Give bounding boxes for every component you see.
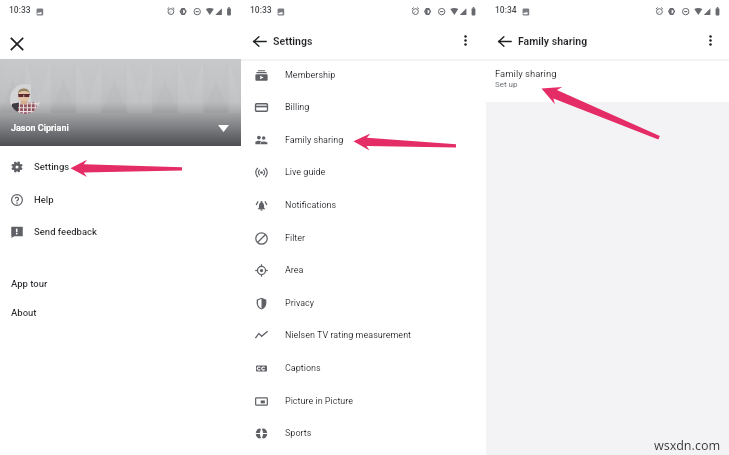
staticText: About xyxy=(11,307,37,318)
button[interactable]: App tour xyxy=(0,269,241,297)
staticText: Settings xyxy=(34,161,70,172)
staticText: Area xyxy=(285,265,304,276)
staticText: 10:33 xyxy=(9,5,31,15)
button[interactable]: Sports xyxy=(241,417,486,449)
button[interactable]: Family sharing xyxy=(241,124,486,156)
staticText: Filter xyxy=(285,233,306,244)
button[interactable]: Notifications xyxy=(241,189,486,221)
staticText: Picture in Picture xyxy=(285,396,354,407)
button[interactable]: Family sharing xyxy=(486,60,729,102)
staticText: Privacy xyxy=(285,298,315,309)
button[interactable]: Picture in Picture xyxy=(241,385,486,417)
button[interactable]: More options xyxy=(458,33,473,48)
button[interactable]: Captions xyxy=(241,352,486,384)
staticText: Jason Cipriani xyxy=(11,123,69,134)
button[interactable]: Back xyxy=(497,34,512,49)
staticText: 10:33 xyxy=(250,5,272,15)
staticText: Help xyxy=(34,194,54,205)
button[interactable]: Privacy xyxy=(241,287,486,319)
staticText: Settings xyxy=(273,35,313,47)
button[interactable]: Back xyxy=(252,34,267,49)
staticText: Billing xyxy=(285,102,310,113)
staticText: Sports xyxy=(285,428,312,439)
staticText: Captions xyxy=(285,363,321,374)
button[interactable]: Nielsen TV rating measurement xyxy=(241,319,486,351)
staticText: Live guide xyxy=(285,167,326,178)
button[interactable]: Filter xyxy=(241,222,486,254)
button[interactable]: Area xyxy=(241,254,486,286)
button[interactable]: Help xyxy=(0,184,241,216)
staticText: Notifications xyxy=(285,200,337,211)
button[interactable]: Settings xyxy=(0,151,241,183)
button[interactable]: Billing xyxy=(241,91,486,123)
button[interactable]: About xyxy=(0,298,241,326)
staticText: Family sharing xyxy=(518,35,588,47)
staticText: Membership xyxy=(285,70,336,81)
button[interactable]: Account avatar xyxy=(10,84,40,114)
staticText: Send feedback xyxy=(34,226,97,237)
staticText: Set up xyxy=(495,80,518,89)
staticText: 10:34 xyxy=(495,5,517,15)
button[interactable]: Send feedback xyxy=(0,216,241,248)
button[interactable]: Live guide xyxy=(241,156,486,188)
staticText: App tour xyxy=(11,278,48,289)
button[interactable]: Membership xyxy=(241,59,486,91)
staticText: Family sharing xyxy=(285,135,344,146)
button[interactable]: More options xyxy=(703,33,718,48)
button[interactable]: Close xyxy=(7,34,27,54)
staticText: Family sharing xyxy=(495,68,557,79)
staticText: Nielsen TV rating measurement xyxy=(285,330,412,341)
staticText: wsxdn.com xyxy=(654,437,721,454)
